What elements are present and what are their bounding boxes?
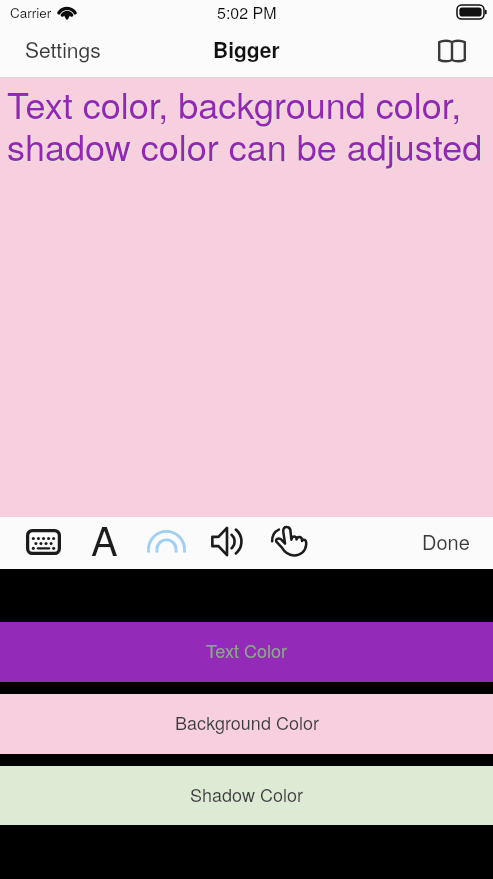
button[interactable]: Touch to read	[271, 525, 308, 557]
button[interactable]: Shadow Color	[0, 766, 493, 825]
staticText: Carrier	[10, 3, 52, 22]
staticText: Bigger	[213, 34, 280, 64]
staticText: Done	[422, 527, 470, 556]
button[interactable]: Text Color	[0, 622, 493, 682]
button[interactable]: Speak	[211, 526, 245, 557]
staticText: Text color, background color, shadow col…	[7, 78, 493, 172]
button[interactable]: Settings	[7, 26, 119, 72]
staticText: 5:02 PM	[217, 1, 277, 24]
button[interactable]: Done	[404, 519, 493, 564]
button[interactable]: Library	[422, 30, 482, 72]
button[interactable]: Keyboard	[26, 529, 61, 555]
staticText: Text Color	[206, 637, 287, 663]
staticText: A	[91, 510, 118, 567]
staticText: Background Color	[175, 709, 319, 735]
staticText: Shadow Color	[190, 781, 303, 807]
button[interactable]: Background Color	[0, 694, 493, 754]
button[interactable]: Colors	[147, 528, 186, 554]
staticText: Settings	[25, 34, 101, 64]
button[interactable]: Font size	[91, 510, 118, 567]
